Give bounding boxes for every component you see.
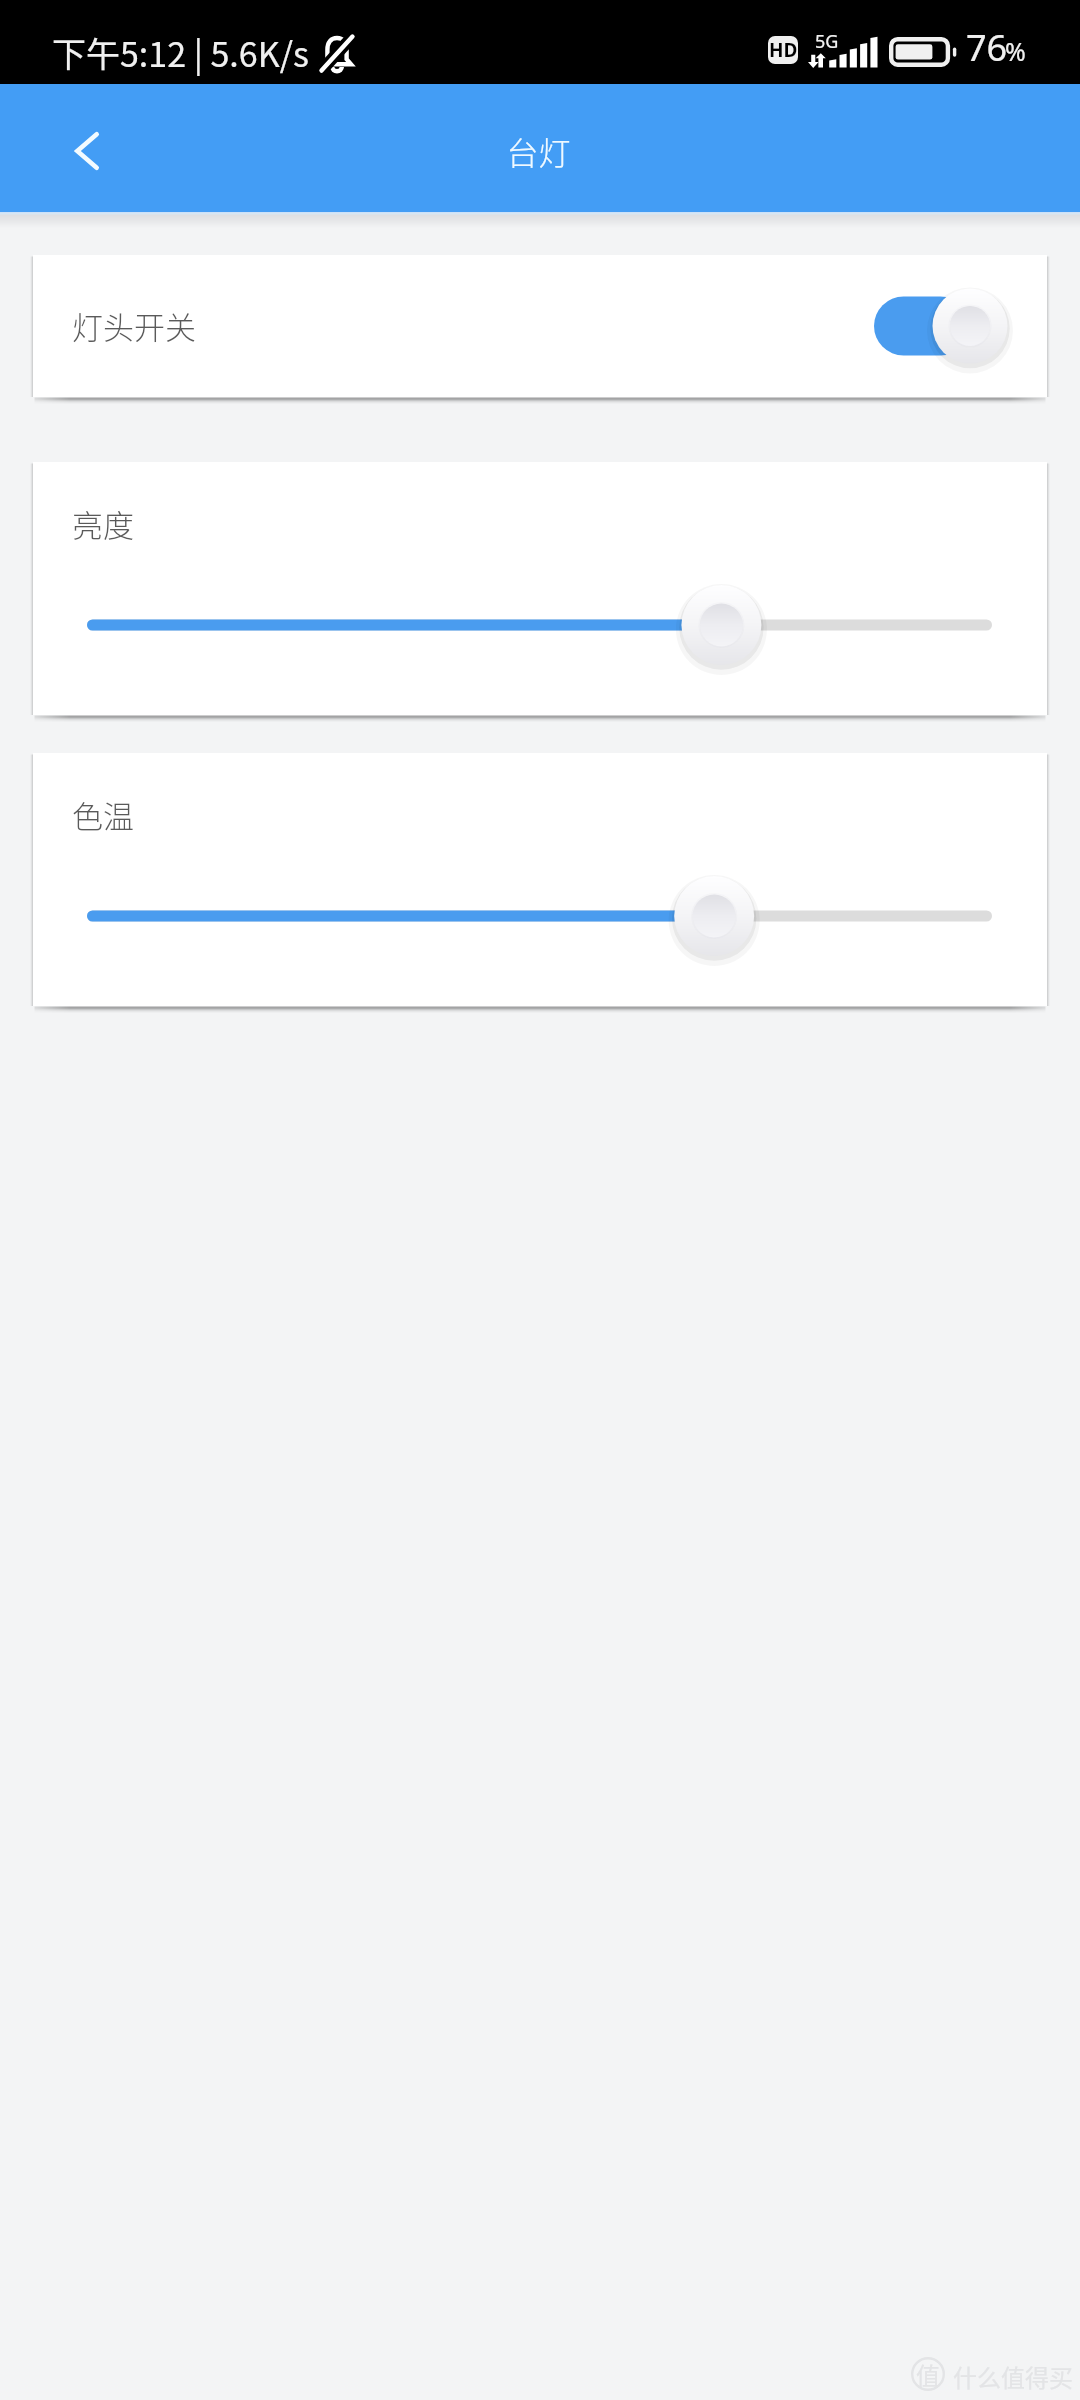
- staticText: 什么值得买: [953, 2359, 1073, 2394]
- staticText: 值: [916, 2357, 940, 2391]
- staticText: 色温: [72, 792, 134, 837]
- staticText: 台灯: [506, 128, 571, 174]
- button[interactable]: Lamp head switch, on: [865, 271, 1045, 381]
- staticText: 5G: [815, 29, 839, 54]
- staticText: %: [1005, 34, 1026, 68]
- staticText: 76: [966, 23, 1008, 72]
- staticText: 亮度: [72, 501, 134, 546]
- staticText: HD: [769, 37, 798, 63]
- button[interactable]: 灯头开关: [33, 255, 1047, 397]
- staticText: 灯头开关: [72, 303, 196, 348]
- button[interactable]: 色温 slider: [33, 866, 1047, 966]
- button[interactable]: 亮度 slider: [33, 575, 1047, 675]
- staticText: 下午5:12 | 5.6K/s: [52, 28, 309, 77]
- button[interactable]: Back: [0, 84, 150, 212]
